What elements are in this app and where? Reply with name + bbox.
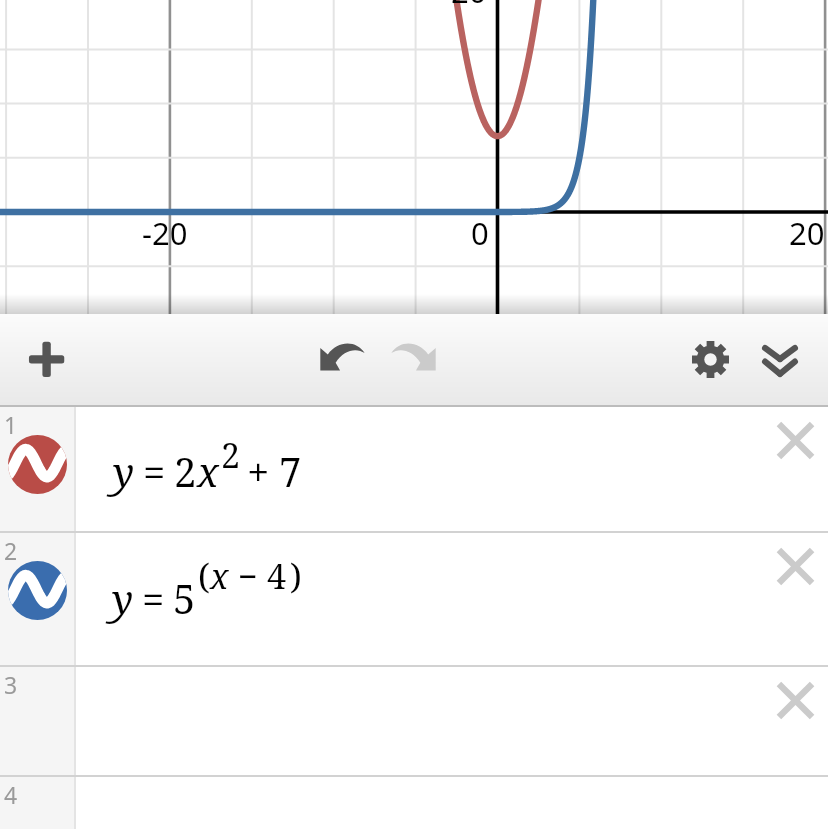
button[interactable]: Delete expression 2	[776, 544, 815, 583]
button[interactable]: Undo	[316, 337, 368, 378]
staticText: =	[143, 444, 166, 498]
button[interactable]: Add expression	[17, 330, 77, 390]
staticText: 2	[4, 535, 18, 566]
staticText: (	[198, 553, 210, 599]
button[interactable]: Toggle curve 1 visibility	[8, 435, 67, 494]
staticText: 0	[471, 212, 489, 254]
staticText: x	[210, 553, 229, 599]
staticText: =	[142, 571, 165, 625]
button[interactable]: Settings	[692, 341, 729, 378]
button[interactable]: Delete expression 1	[776, 418, 815, 457]
button[interactable]: 1	[0, 407, 828, 531]
staticText: x	[197, 444, 219, 498]
button[interactable]: Toggle curve 2 visibility	[8, 561, 67, 620]
button[interactable]: 3	[0, 667, 828, 775]
staticText: 2	[221, 432, 241, 478]
staticText: 20	[451, 0, 487, 12]
staticText: y	[112, 571, 134, 625]
staticText: 7	[279, 444, 302, 498]
button[interactable]: 4	[0, 777, 828, 829]
staticText: +	[247, 444, 270, 498]
staticText: −	[238, 553, 258, 599]
staticText: 20	[789, 212, 825, 254]
button[interactable]: Redo	[388, 337, 440, 378]
staticText: 3	[4, 669, 18, 700]
staticText: 2	[174, 444, 197, 498]
staticText: 1	[4, 409, 18, 440]
button[interactable]: Delete expression 3	[776, 678, 815, 717]
staticText: 4	[267, 553, 287, 599]
staticText: )	[290, 553, 302, 599]
staticText: y	[113, 444, 135, 498]
button[interactable]: Collapse keypad	[762, 345, 798, 377]
staticText: 5	[173, 571, 196, 625]
staticText: 4	[4, 779, 18, 810]
button[interactable]: 2	[0, 533, 828, 665]
staticText: -20	[142, 212, 188, 254]
